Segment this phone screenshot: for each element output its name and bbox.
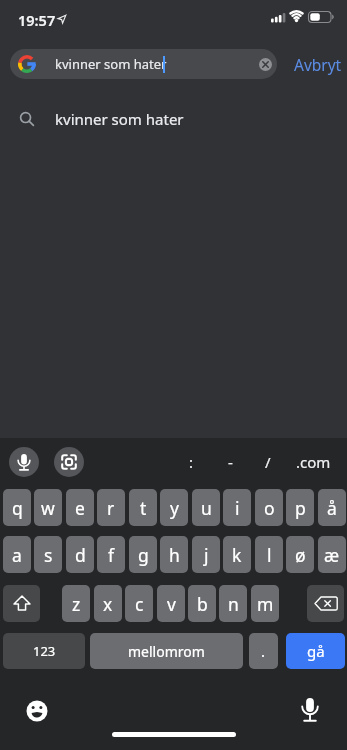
button[interactable]: - xyxy=(220,449,240,474)
button[interactable]: å xyxy=(318,489,346,526)
button[interactable]: g xyxy=(129,536,157,573)
staticText: f xyxy=(108,543,115,567)
button[interactable]: n xyxy=(219,585,247,622)
staticText: kvinner som hater xyxy=(55,109,184,129)
button[interactable]: d xyxy=(66,536,94,573)
staticText: v xyxy=(167,592,176,616)
button[interactable]: / xyxy=(258,449,278,474)
button[interactable]: 123 xyxy=(3,633,85,669)
button[interactable]: u xyxy=(192,489,220,526)
button[interactable]: f xyxy=(97,536,125,573)
button[interactable]: p xyxy=(286,489,314,526)
staticText: kvinner som hater xyxy=(55,55,167,73)
button[interactable]: i xyxy=(223,489,251,526)
staticText: y xyxy=(170,496,179,520)
button[interactable] xyxy=(296,697,324,725)
button[interactable]: e xyxy=(66,489,94,526)
staticText: / xyxy=(265,452,271,472)
button[interactable]: w xyxy=(34,489,62,526)
button[interactable] xyxy=(0,99,347,139)
staticText: b xyxy=(197,592,208,616)
staticText: : xyxy=(189,452,194,472)
button[interactable] xyxy=(3,585,40,622)
button[interactable] xyxy=(307,585,344,622)
button[interactable]: l xyxy=(255,536,283,573)
staticText: q xyxy=(12,496,23,520)
staticText: r xyxy=(107,496,115,520)
button[interactable]: z xyxy=(62,585,90,622)
button[interactable]: t xyxy=(129,489,157,526)
button[interactable]: æ xyxy=(318,536,346,573)
button[interactable] xyxy=(10,49,277,79)
staticText: .com xyxy=(296,452,331,472)
button[interactable]: m xyxy=(251,585,279,622)
staticText: x xyxy=(103,592,113,616)
staticText: ø xyxy=(295,543,306,567)
staticText: 123 xyxy=(33,642,56,660)
staticText: a xyxy=(12,543,22,567)
button[interactable] xyxy=(9,447,39,477)
staticText: i xyxy=(235,496,240,520)
staticText: mellomrom xyxy=(128,642,205,661)
button[interactable]: h xyxy=(160,536,188,573)
button[interactable]: c xyxy=(125,585,153,622)
staticText: å xyxy=(327,496,337,520)
button[interactable]: r xyxy=(97,489,125,526)
staticText: d xyxy=(75,543,86,567)
button[interactable]: s xyxy=(34,536,62,573)
staticText: Avbryt xyxy=(294,54,342,75)
button[interactable]: x xyxy=(94,585,122,622)
button[interactable] xyxy=(25,699,49,723)
staticText: n xyxy=(228,592,239,616)
staticText: w xyxy=(41,496,55,520)
button[interactable]: gå xyxy=(286,633,345,669)
staticText: z xyxy=(72,592,81,616)
staticText: e xyxy=(75,496,85,520)
staticText: - xyxy=(228,452,233,472)
staticText: m xyxy=(257,592,274,616)
staticText: j xyxy=(204,543,209,567)
button[interactable] xyxy=(54,447,84,477)
staticText: 19:57 xyxy=(18,10,56,30)
staticText: g xyxy=(138,543,149,567)
button[interactable]: a xyxy=(3,536,31,573)
staticText: æ xyxy=(324,543,340,567)
staticText: . xyxy=(261,641,266,661)
staticText: l xyxy=(267,543,272,567)
button[interactable]: .com xyxy=(293,449,333,474)
staticText: u xyxy=(201,496,212,520)
staticText: gå xyxy=(307,641,325,661)
staticText: s xyxy=(44,543,53,567)
button[interactable]: k xyxy=(223,536,251,573)
button[interactable]: Avbryt xyxy=(288,49,347,79)
staticText: p xyxy=(295,496,306,520)
staticText: h xyxy=(169,543,180,567)
staticText: o xyxy=(264,496,275,520)
button[interactable]: . xyxy=(249,633,278,669)
button[interactable]: b xyxy=(188,585,216,622)
staticText: t xyxy=(140,496,147,520)
button[interactable]: : xyxy=(181,449,201,474)
button[interactable]: mellomrom xyxy=(90,633,243,669)
button[interactable]: j xyxy=(192,536,220,573)
button[interactable]: q xyxy=(3,489,31,526)
button[interactable]: o xyxy=(255,489,283,526)
button[interactable]: ø xyxy=(286,536,314,573)
staticText: c xyxy=(135,592,144,616)
button[interactable]: v xyxy=(157,585,185,622)
staticText: k xyxy=(232,543,242,567)
button[interactable] xyxy=(259,58,272,71)
button[interactable]: y xyxy=(160,489,188,526)
